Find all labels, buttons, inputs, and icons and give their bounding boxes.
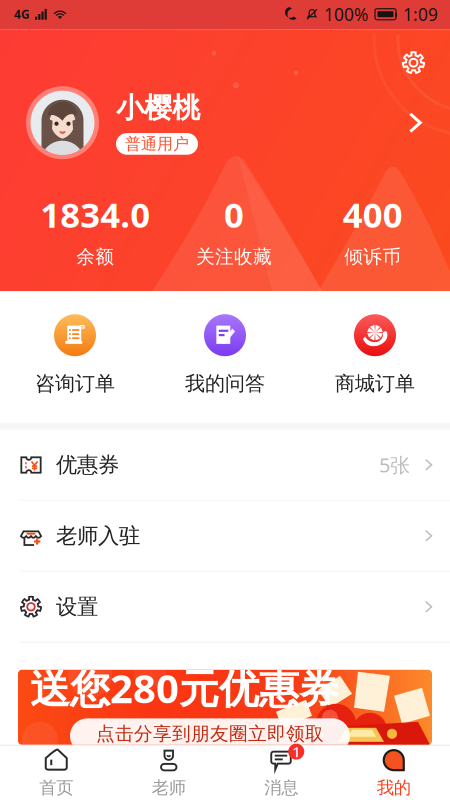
button[interactable]: 400 — [303, 191, 442, 268]
button[interactable]: 商城订单 — [300, 314, 450, 396]
staticText: 送您280元优惠券 — [30, 661, 339, 714]
staticText: 点击分享到朋友圈立即领取 — [96, 722, 324, 745]
staticText: 首页 — [39, 777, 73, 798]
staticText: 1 — [292, 742, 300, 761]
button[interactable]: 我的问答 — [150, 314, 300, 396]
button[interactable]: 送您280元优惠券 — [0, 643, 450, 745]
staticText: 优惠券 — [56, 452, 119, 478]
staticText: 咨询订单 — [35, 371, 115, 396]
button[interactable]: 老师 — [112, 746, 225, 800]
button[interactable]: 优惠券 — [0, 430, 450, 501]
staticText: 消息 — [264, 777, 298, 798]
button[interactable]: 老师入驻 — [0, 501, 450, 572]
staticText: 4G — [14, 6, 30, 22]
button[interactable]: 咨询订单 — [0, 314, 150, 396]
staticText: 100% — [324, 3, 368, 26]
button[interactable]: 我的 — [337, 746, 450, 800]
staticText: 400 — [343, 191, 403, 237]
staticText: 关注收藏 — [196, 245, 272, 268]
button[interactable]: 首页 — [0, 746, 112, 800]
staticText: 0 — [224, 191, 244, 237]
button[interactable]: 0 — [165, 191, 303, 268]
button[interactable]: 1 — [225, 746, 337, 800]
staticText: 倾诉币 — [344, 245, 401, 268]
staticText: 1:09 — [403, 3, 438, 26]
staticText: 1834.0 — [40, 191, 150, 237]
staticText: 普通用户 — [125, 134, 189, 154]
staticText: 小樱桃 — [116, 91, 200, 125]
button[interactable]: 设置 — [392, 41, 435, 84]
staticText: 老师入驻 — [56, 523, 140, 549]
staticText: 我的 — [377, 777, 411, 798]
staticText: 我的问答 — [185, 371, 265, 396]
button[interactable]: 1834.0 — [26, 191, 165, 268]
staticText: 老师 — [152, 777, 186, 798]
staticText: 余额 — [76, 245, 114, 268]
button[interactable]: 设置 — [0, 572, 450, 643]
staticText: 5张 — [379, 451, 410, 478]
staticText: 设置 — [56, 594, 98, 620]
staticText: 商城订单 — [335, 371, 415, 396]
button[interactable]: 小樱桃 — [0, 86, 450, 159]
